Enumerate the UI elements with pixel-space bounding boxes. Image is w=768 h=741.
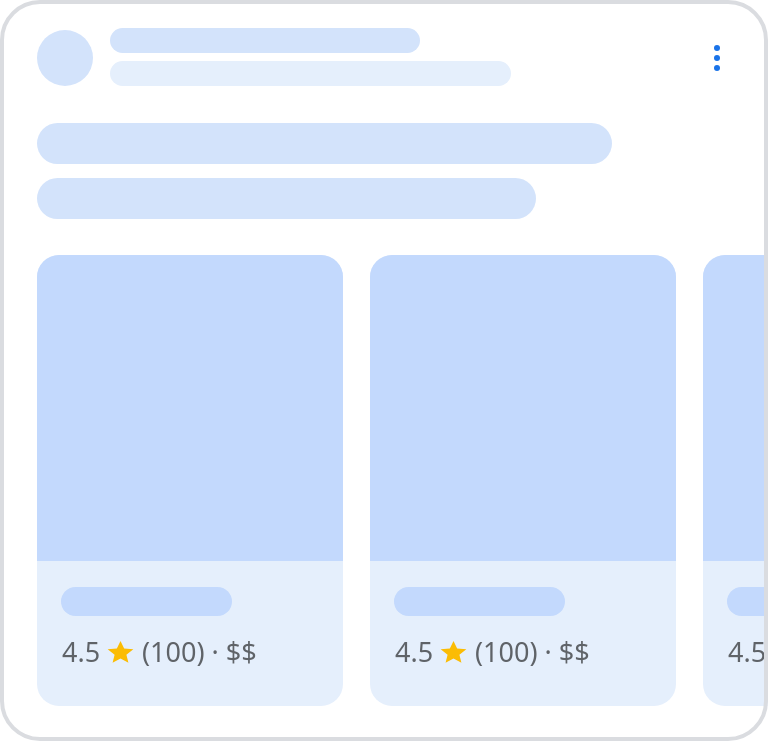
staticText: 4.5 bbox=[62, 633, 101, 670]
button[interactable] bbox=[19, 14, 679, 100]
staticText: 4.5 bbox=[395, 633, 434, 670]
button[interactable]: 4.5 bbox=[703, 255, 768, 706]
button[interactable]: 4.5 bbox=[370, 255, 676, 706]
button[interactable]: 4.5 bbox=[37, 255, 343, 706]
staticText: (100) · $$ bbox=[475, 633, 590, 670]
staticText: 4.5 bbox=[728, 633, 767, 670]
button[interactable]: More options bbox=[693, 34, 741, 82]
other: Rating star bbox=[107, 641, 134, 665]
other: Rating star bbox=[440, 641, 467, 665]
staticText: (100) · $$ bbox=[142, 633, 257, 670]
